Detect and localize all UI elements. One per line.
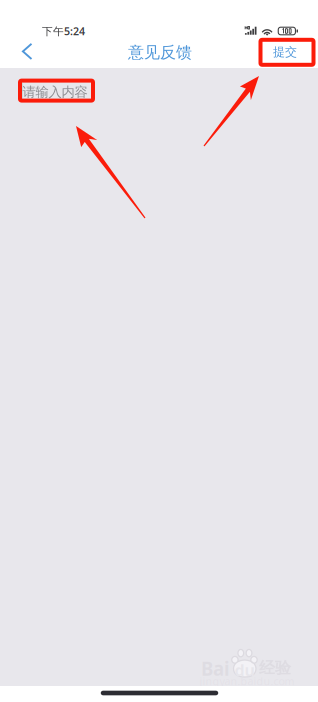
staticText: 请输入内容 bbox=[22, 84, 87, 100]
staticText: du bbox=[234, 659, 254, 681]
staticText: jingyan.baidu.com bbox=[199, 674, 294, 688]
staticText: Bai bbox=[201, 656, 230, 681]
staticText: 提交 bbox=[273, 45, 297, 59]
staticText: 经验 bbox=[259, 658, 291, 678]
staticText: 下午5:24 bbox=[42, 24, 85, 38]
button[interactable]: 返回 bbox=[7, 34, 47, 68]
button[interactable]: 提交 bbox=[258, 37, 312, 67]
staticText: 意见反馈 bbox=[128, 43, 192, 62]
